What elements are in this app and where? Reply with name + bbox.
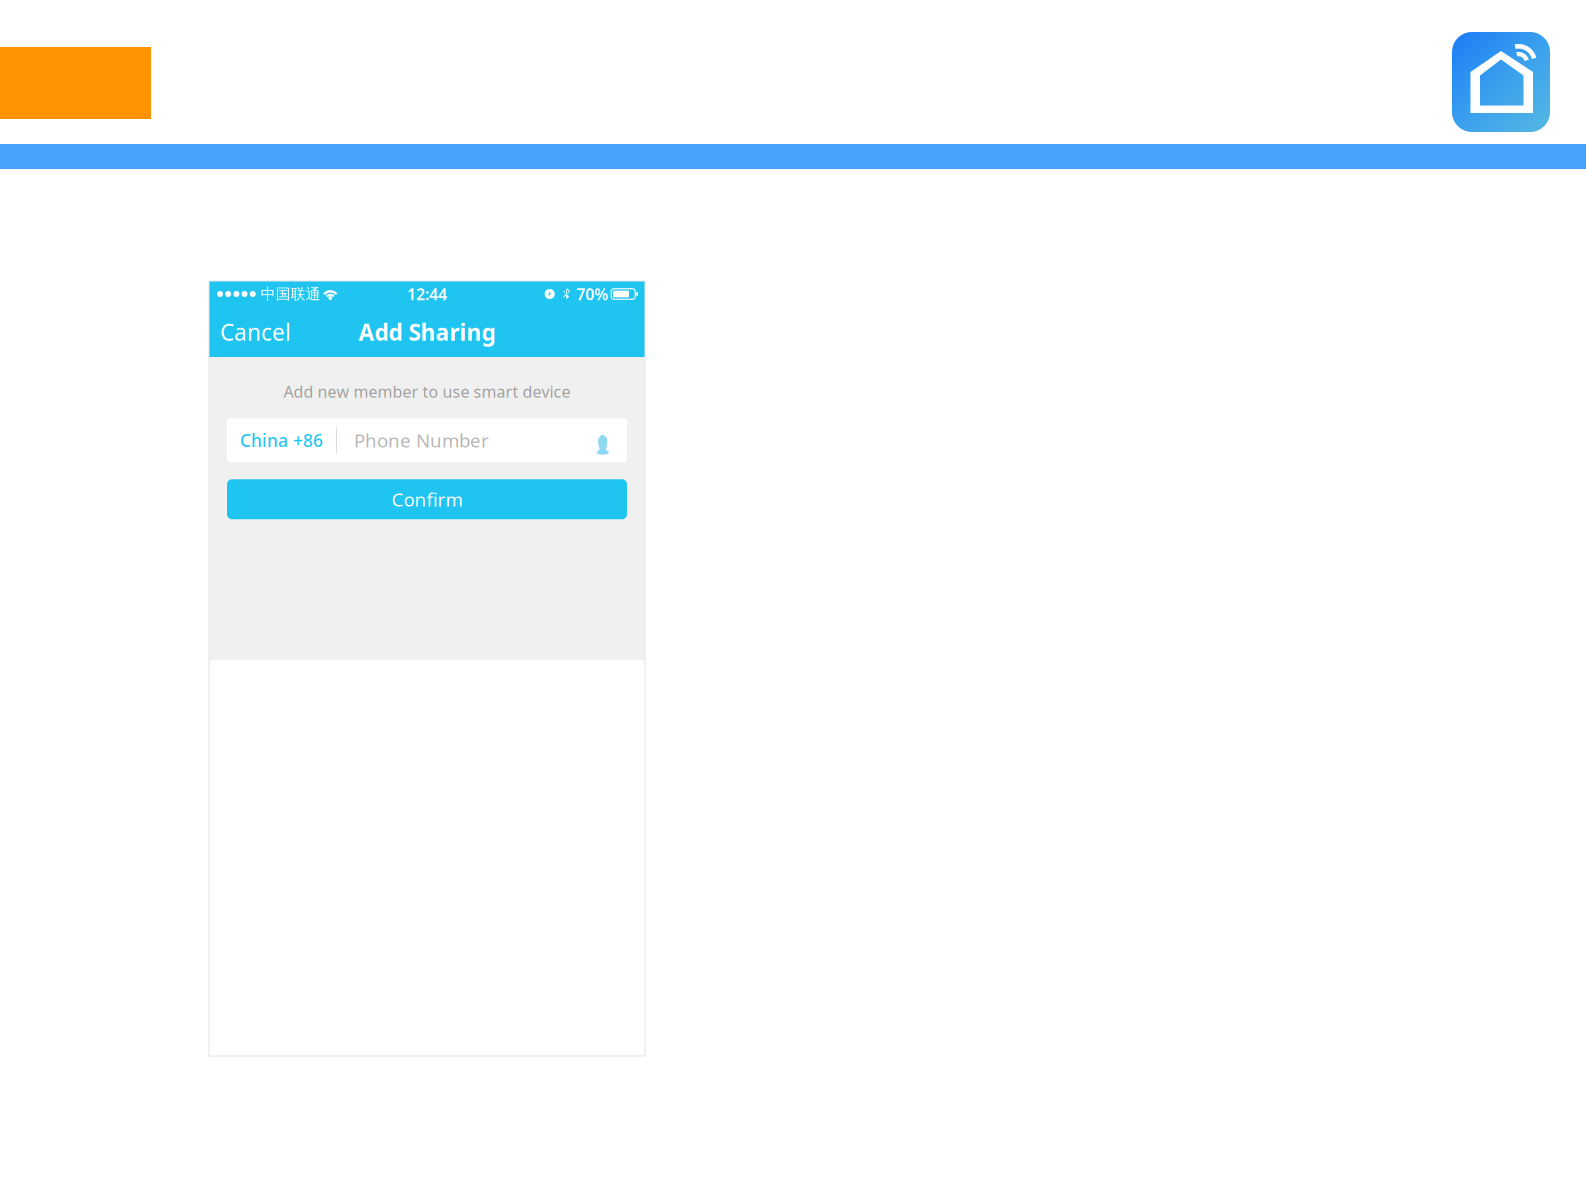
staticText: Add new member to use smart device (283, 381, 570, 402)
staticText: Phone Number (354, 428, 489, 453)
staticText: 70% (576, 283, 608, 305)
button[interactable]: Cancel (209, 307, 302, 357)
button[interactable]: China +86 (227, 418, 336, 462)
button[interactable]: Confirm (227, 479, 627, 519)
staticText: Confirm (391, 487, 462, 512)
button[interactable]: Choose contact (586, 418, 627, 462)
staticText: China +86 (240, 429, 323, 452)
staticText: 中国联通 (261, 285, 321, 303)
staticText: 12:44 (407, 283, 447, 305)
staticText: Cancel (220, 317, 291, 347)
staticText: Add Sharing (358, 317, 495, 347)
